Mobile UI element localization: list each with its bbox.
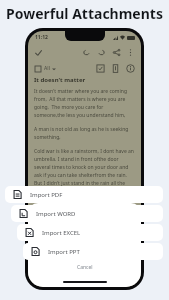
button[interactable]: Cancel bbox=[67, 262, 103, 273]
button[interactable]: More options bbox=[126, 48, 135, 57]
button[interactable]: Checklist bbox=[96, 64, 105, 73]
staticText: All bbox=[44, 65, 50, 72]
staticText: 11:12 bbox=[35, 34, 48, 41]
button[interactable]: Import WORD bbox=[11, 205, 163, 222]
staticText: Import EXCEL bbox=[42, 229, 81, 237]
button[interactable]: Done bbox=[34, 48, 43, 57]
button[interactable]: All bbox=[34, 64, 57, 73]
staticText: Import PPT bbox=[48, 248, 80, 256]
button[interactable]: Share bbox=[112, 48, 121, 57]
staticText: Powerful Attachments bbox=[6, 4, 163, 23]
button[interactable]: Info bbox=[126, 64, 135, 73]
button[interactable]: Redo bbox=[97, 48, 106, 57]
staticText: It doesn't matter bbox=[34, 76, 86, 84]
staticText: It doesn't matter where you are coming f… bbox=[34, 88, 135, 119]
button[interactable]: Undo bbox=[82, 48, 91, 57]
staticText: Cold war is like a rainstorm, I dont hav… bbox=[34, 148, 135, 195]
button[interactable]: Import PDF bbox=[5, 186, 163, 203]
staticText: Import PDF bbox=[30, 191, 63, 199]
button[interactable]: Import PPT bbox=[23, 243, 163, 260]
staticText: A man is not old as long as he is seekin… bbox=[34, 126, 135, 141]
button[interactable]: Attach bbox=[111, 64, 120, 73]
staticText: Import WORD bbox=[36, 210, 76, 218]
button[interactable]: Import EXCEL bbox=[17, 224, 163, 241]
